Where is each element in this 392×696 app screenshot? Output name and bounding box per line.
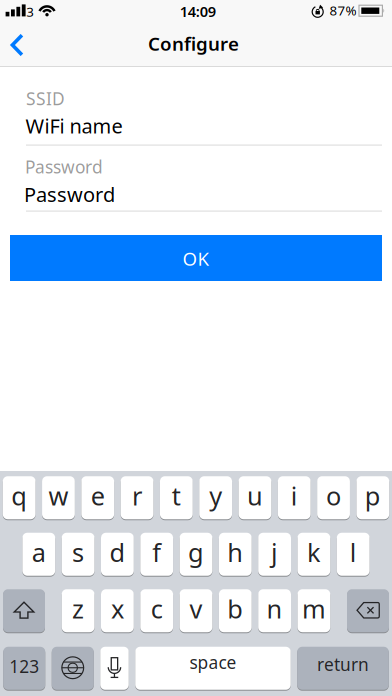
button[interactable]: k [297, 532, 330, 576]
button[interactable]: Shift [3, 589, 45, 633]
staticText: SSID [26, 87, 65, 110]
button[interactable]: c [140, 589, 173, 633]
staticText: Password [24, 181, 115, 208]
staticText: return [317, 653, 369, 676]
button[interactable]: j [258, 532, 291, 576]
staticText: k [307, 535, 321, 569]
staticText: j [271, 535, 278, 569]
staticText: e [91, 479, 105, 512]
button[interactable]: d [101, 532, 134, 576]
button[interactable]: 123 [3, 646, 45, 690]
staticText: 87% [330, 1, 357, 19]
staticText: x [111, 592, 124, 625]
button[interactable]: u [238, 476, 271, 520]
button[interactable]: w [42, 476, 75, 520]
staticText: v [189, 592, 202, 625]
button[interactable]: o [317, 476, 350, 520]
staticText: Password [25, 155, 103, 178]
button[interactable]: b [219, 589, 252, 633]
staticText: m [302, 592, 326, 625]
staticText: r [132, 479, 142, 512]
button[interactable]: Back [0, 25, 34, 65]
staticText: t [172, 479, 181, 512]
button[interactable]: s [62, 532, 94, 576]
button[interactable]: OK [10, 235, 382, 281]
staticText: f [152, 535, 161, 569]
button[interactable]: l [337, 532, 370, 576]
button[interactable]: q [3, 476, 35, 520]
staticText: w [48, 479, 68, 512]
button[interactable]: a [22, 532, 55, 576]
staticText: h [227, 535, 243, 569]
button[interactable]: e [81, 476, 114, 520]
staticText: p [365, 479, 381, 512]
staticText: z [72, 592, 84, 625]
staticText: d [109, 535, 125, 569]
button[interactable]: space [135, 646, 291, 690]
button[interactable]: p [356, 476, 389, 520]
button[interactable]: m [297, 589, 330, 633]
staticText: 14:09 [180, 2, 216, 21]
staticText: n [267, 592, 283, 625]
button[interactable]: g [180, 532, 212, 576]
button[interactable]: Dictate [100, 646, 129, 690]
staticText: Configure [148, 31, 239, 56]
button[interactable]: x [101, 589, 134, 633]
staticText: a [32, 535, 46, 569]
staticText: 3 [26, 3, 34, 20]
staticText: space [189, 651, 236, 674]
staticText: WiFi name [25, 112, 122, 139]
button[interactable]: i [278, 476, 311, 520]
staticText: u [247, 479, 263, 512]
staticText: i [291, 479, 298, 512]
staticText: g [188, 535, 204, 569]
staticText: y [209, 479, 222, 512]
button[interactable]: h [219, 532, 252, 576]
button[interactable]: return [297, 646, 389, 690]
staticText: q [11, 479, 27, 512]
staticText: o [326, 479, 341, 512]
button[interactable]: n [258, 589, 291, 633]
staticText: 123 [9, 655, 39, 678]
button[interactable]: z [62, 589, 94, 633]
staticText: l [350, 535, 357, 569]
button[interactable]: Next keyboard [52, 646, 94, 690]
button[interactable]: y [199, 476, 232, 520]
button[interactable]: r [121, 476, 153, 520]
staticText: s [72, 535, 84, 569]
button[interactable]: Delete [347, 589, 389, 633]
staticText: c [151, 592, 163, 625]
button[interactable]: v [180, 589, 212, 633]
button[interactable]: f [140, 532, 173, 576]
staticText: OK [182, 246, 209, 271]
button[interactable]: t [160, 476, 193, 520]
staticText: b [227, 592, 243, 625]
